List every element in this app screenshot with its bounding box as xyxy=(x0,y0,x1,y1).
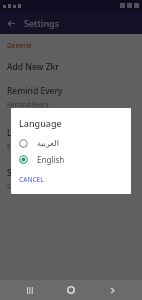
button[interactable]: Add New Zkr xyxy=(0,59,142,75)
staticText: Settings xyxy=(24,17,60,29)
button[interactable]: Home xyxy=(63,282,79,298)
button[interactable]: Back xyxy=(2,14,20,32)
staticText: Add New Zkr xyxy=(7,61,59,73)
staticText: العربية xyxy=(37,139,59,148)
staticText: Language xyxy=(19,117,62,129)
button[interactable]: Recents xyxy=(22,282,38,298)
staticText: English xyxy=(7,142,30,151)
staticText: Remind Every xyxy=(7,100,49,109)
staticText: English xyxy=(37,154,65,165)
staticText: Remind Every xyxy=(7,85,63,97)
staticText: General xyxy=(7,41,32,50)
button[interactable]: Remind Every xyxy=(0,83,142,111)
staticText: Language xyxy=(7,127,48,139)
staticText: Share App xyxy=(7,167,49,179)
button[interactable]: Back xyxy=(104,282,120,298)
staticText: Share the app with your friends xyxy=(7,182,104,191)
staticText: CANCEL xyxy=(19,175,44,184)
button[interactable]: Share App xyxy=(0,165,142,193)
button[interactable]: English xyxy=(11,151,131,168)
button[interactable]: CANCEL xyxy=(16,172,47,187)
button[interactable]: العربية xyxy=(11,136,131,151)
button[interactable]: Language xyxy=(0,125,142,153)
